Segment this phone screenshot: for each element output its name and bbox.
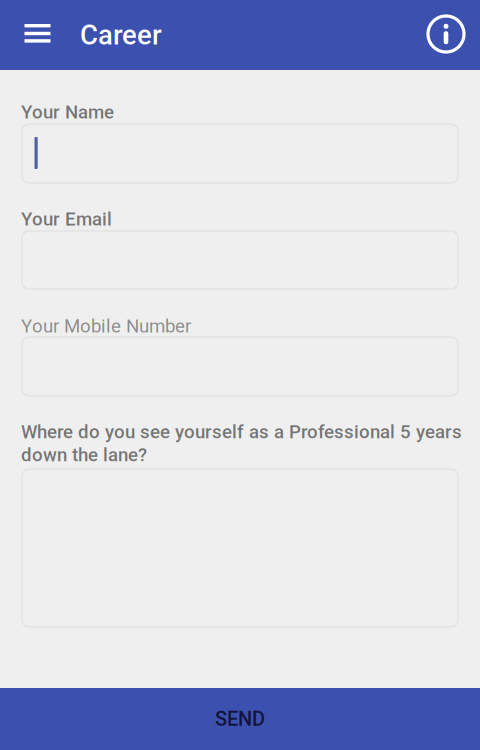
- staticText: Career: [80, 19, 162, 51]
- button[interactable]: Information: [420, 0, 472, 69]
- button[interactable]: Career: [80, 0, 162, 70]
- staticText: Your Email: [21, 208, 112, 230]
- button[interactable]: Menu: [13, 0, 62, 68]
- staticText: Your Mobile Number: [21, 315, 191, 337]
- button[interactable]: SEND: [0, 688, 480, 750]
- staticText: SEND: [215, 707, 265, 731]
- staticText: Your Name: [21, 101, 114, 123]
- staticText: Where do you see yourself as a Professio…: [21, 421, 462, 466]
